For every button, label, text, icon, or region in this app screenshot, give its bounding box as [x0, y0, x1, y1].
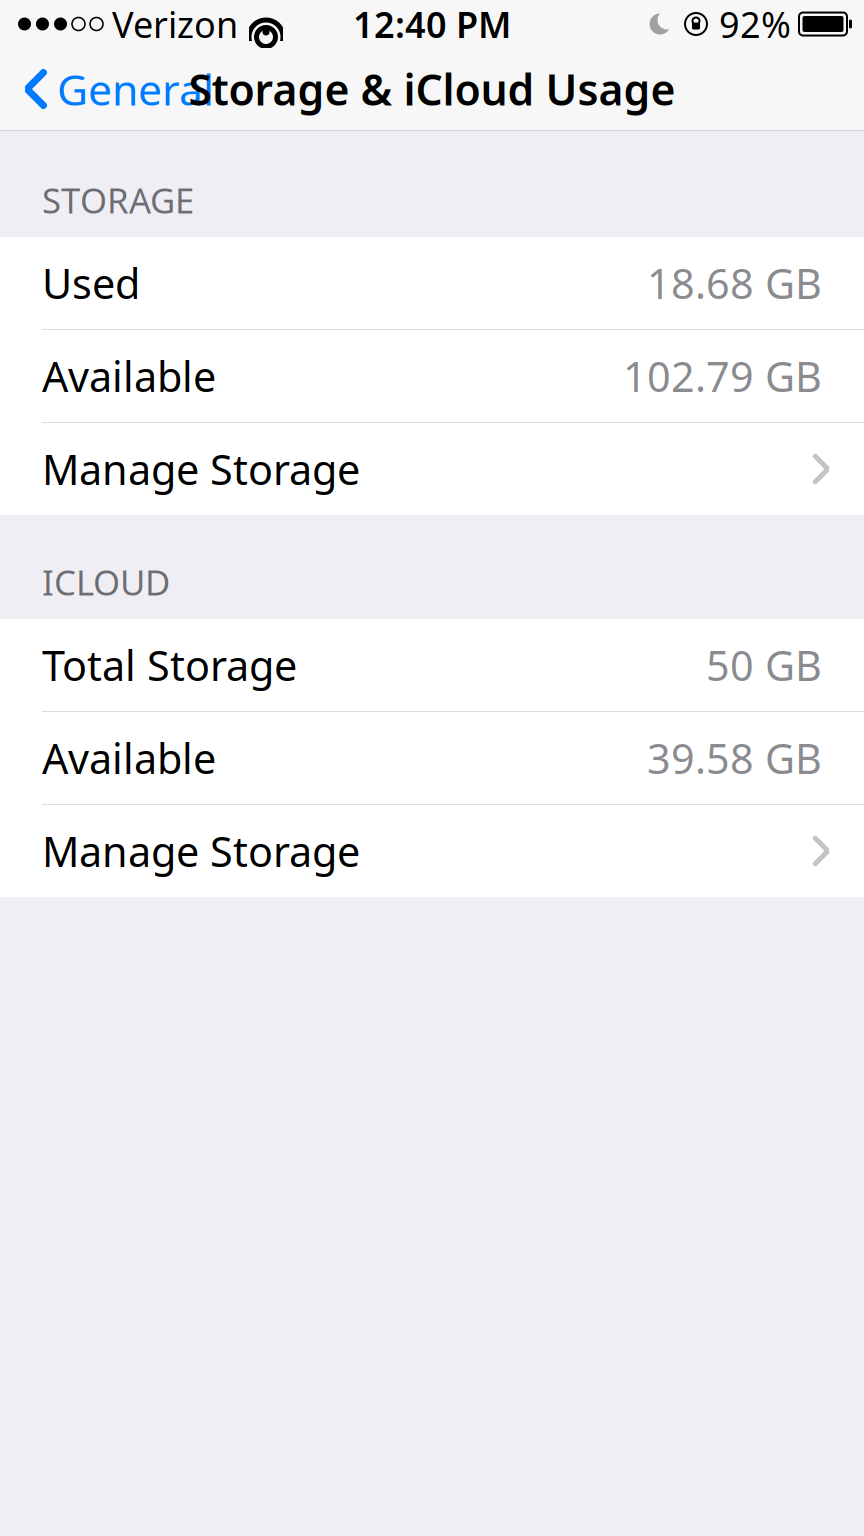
- staticText: General: [57, 61, 214, 117]
- staticText: 12:40 PM: [353, 0, 511, 48]
- staticText: Used: [42, 256, 140, 310]
- staticText: Total Storage: [42, 638, 297, 692]
- staticText: Manage Storage: [42, 442, 360, 496]
- staticText: Storage & iCloud Usage: [188, 61, 675, 117]
- button[interactable]: Manage Storage: [0, 423, 864, 515]
- staticText: Available: [42, 349, 216, 403]
- staticText: 50 GB: [706, 638, 822, 692]
- staticText: 102.79 GB: [623, 349, 822, 403]
- staticText: Manage Storage: [42, 824, 360, 878]
- staticText: 92%: [719, 0, 791, 48]
- staticText: STORAGE: [42, 177, 194, 223]
- button[interactable]: General: [0, 49, 214, 129]
- staticText: 39.58 GB: [647, 731, 822, 785]
- staticText: Verizon: [112, 0, 238, 48]
- staticText: ICLOUD: [42, 559, 170, 605]
- staticText: 18.68 GB: [647, 256, 822, 310]
- button[interactable]: Manage Storage: [0, 805, 864, 897]
- staticText: Available: [42, 731, 216, 785]
